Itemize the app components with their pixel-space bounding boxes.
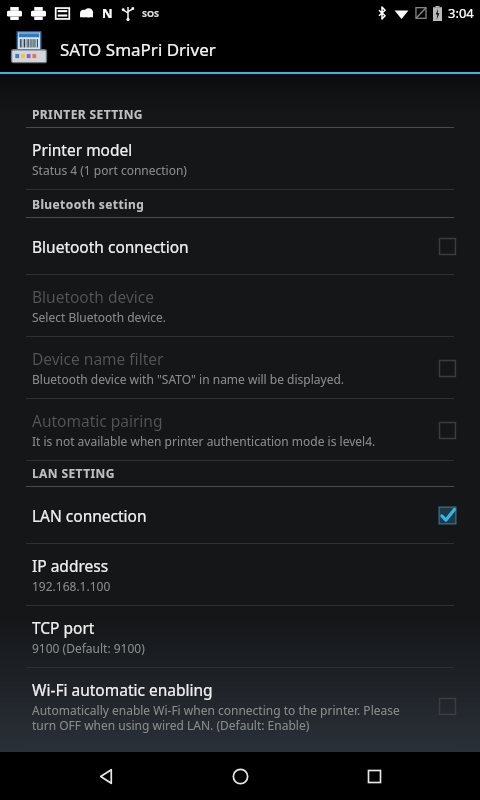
button[interactable]: Automatic pairing xyxy=(430,413,464,447)
button[interactable]: Printer model xyxy=(0,128,480,190)
staticText: SOS xyxy=(142,7,160,19)
staticText: Bluetooth connection xyxy=(32,236,189,257)
staticText: Bluetooth device with "SATO" in name wil… xyxy=(32,371,344,387)
staticText: IP address xyxy=(32,555,109,576)
staticText: Device name filter xyxy=(32,348,164,369)
button[interactable]: Automatic pairing xyxy=(0,399,480,461)
staticText: It is not available when printer authent… xyxy=(32,433,376,449)
button[interactable]: Recents xyxy=(346,752,402,800)
staticText: PRINTER SETTING xyxy=(32,106,143,122)
staticText: Status 4 (1 port connection) xyxy=(32,162,187,178)
staticText: Bluetooth device xyxy=(32,286,154,307)
staticText: 192.168.1.100 xyxy=(32,578,111,594)
staticText: Wi-Fi automatic enabling xyxy=(32,679,213,700)
staticText: LAN SETTING xyxy=(32,465,115,481)
staticText: 9100 (Default: 9100) xyxy=(32,640,145,656)
staticText: LAN connection xyxy=(32,505,147,526)
staticText: Bluetooth setting xyxy=(32,196,145,212)
staticText: Select Bluetooth device. xyxy=(32,309,167,325)
button[interactable]: TCP port xyxy=(0,606,480,668)
button[interactable]: Bluetooth connection xyxy=(430,229,464,263)
button[interactable]: Bluetooth device xyxy=(0,275,480,337)
button[interactable]: LAN connection xyxy=(430,498,464,532)
button[interactable]: LAN connection xyxy=(0,487,480,544)
staticText: Automatic pairing xyxy=(32,410,163,431)
staticText: N xyxy=(102,4,113,22)
button[interactable]: IP address xyxy=(0,544,480,606)
button[interactable]: Wi-Fi automatic enabling xyxy=(0,668,480,745)
button[interactable]: Bluetooth connection xyxy=(0,218,480,275)
staticText: Automatically enable Wi-Fi when connecti… xyxy=(32,702,418,733)
staticText: SATO SmaPri Driver xyxy=(60,38,216,61)
staticText: TCP port xyxy=(32,617,95,638)
staticText: Printer model xyxy=(32,139,133,160)
button[interactable]: Device name filter xyxy=(0,337,480,399)
button[interactable]: Wi-Fi automatic enabling xyxy=(430,689,464,723)
button[interactable]: Home xyxy=(212,752,268,800)
button[interactable]: Back xyxy=(78,752,134,800)
button[interactable]: Device name filter xyxy=(430,351,464,385)
staticText: 3:04 xyxy=(448,4,474,22)
